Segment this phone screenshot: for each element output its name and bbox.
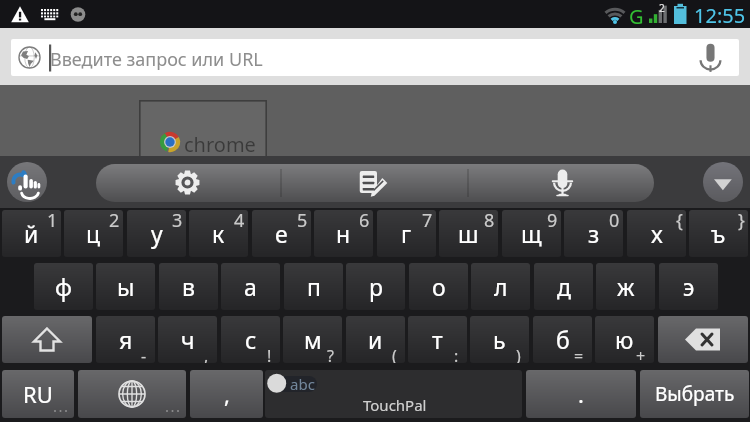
- staticText: о: [432, 271, 446, 302]
- staticText: }: [738, 210, 745, 233]
- button[interactable]: е: [252, 210, 311, 257]
- button[interactable]: и: [346, 316, 405, 363]
- button[interactable]: у: [127, 210, 186, 257]
- staticText: ?: [327, 345, 334, 363]
- button[interactable]: р: [346, 263, 405, 310]
- staticText: RU: [23, 379, 53, 409]
- staticText: ч: [181, 324, 195, 355]
- staticText: (: [392, 345, 397, 363]
- staticText: TouchPal: [363, 395, 427, 415]
- button[interactable]: н: [314, 210, 373, 257]
- button[interactable]: Settings: [96, 164, 282, 202]
- staticText: к: [212, 218, 225, 249]
- button[interactable]: abc: [265, 370, 522, 418]
- staticText: ъ: [711, 218, 726, 249]
- staticText: ): [516, 345, 521, 363]
- button[interactable]: п: [284, 263, 343, 310]
- staticText: ж: [617, 271, 635, 302]
- button[interactable]: д: [534, 263, 593, 310]
- staticText: э: [683, 271, 695, 302]
- staticText: 6: [359, 210, 370, 233]
- staticText: 4: [234, 210, 245, 233]
- button[interactable]: ъ: [689, 210, 748, 257]
- button[interactable]: chrome: [139, 100, 267, 156]
- staticText: !: [267, 345, 272, 363]
- button[interactable]: .: [526, 370, 636, 418]
- staticText: л: [494, 271, 508, 302]
- staticText: б: [556, 324, 570, 355]
- button[interactable]: TouchPal: [7, 162, 47, 202]
- button[interactable]: RU: [2, 370, 74, 418]
- button[interactable]: а: [221, 263, 280, 310]
- staticText: и: [368, 324, 383, 355]
- staticText: chrome: [184, 131, 256, 158]
- button[interactable]: т: [408, 316, 467, 363]
- staticText: {: [676, 210, 683, 233]
- staticText: -: [141, 345, 147, 363]
- button[interactable]: ч: [158, 316, 217, 363]
- staticText: м: [304, 324, 322, 355]
- staticText: 2: [659, 1, 665, 15]
- staticText: ю: [615, 324, 634, 355]
- staticText: н: [336, 218, 351, 249]
- staticText: в: [182, 271, 195, 302]
- staticText: з: [588, 218, 600, 249]
- button[interactable]: ь: [470, 316, 529, 363]
- button[interactable]: Backspace: [658, 316, 748, 363]
- button[interactable]: о: [409, 263, 468, 310]
- button[interactable]: ф: [34, 263, 93, 310]
- staticText: Введите запрос или URL: [50, 47, 263, 72]
- button[interactable]: ц: [64, 210, 123, 257]
- staticText: 0: [609, 210, 620, 233]
- staticText: д: [557, 271, 571, 302]
- staticText: й: [24, 218, 39, 249]
- button[interactable]: ,: [190, 370, 263, 418]
- button[interactable]: г: [377, 210, 436, 257]
- button[interactable]: я: [96, 316, 155, 363]
- staticText: р: [369, 271, 383, 302]
- staticText: х: [651, 218, 663, 249]
- staticText: 8: [484, 210, 495, 233]
- staticText: ш: [458, 218, 479, 249]
- button[interactable]: ж: [596, 263, 655, 310]
- button[interactable]: Notes: [282, 164, 468, 202]
- staticText: а: [244, 271, 257, 302]
- button[interactable]: Shift: [2, 316, 92, 363]
- button[interactable]: з: [564, 210, 623, 257]
- staticText: ,: [204, 345, 209, 363]
- button[interactable]: Введите запрос или URL: [11, 39, 739, 76]
- staticText: 3: [172, 210, 183, 233]
- staticText: 5: [297, 210, 308, 233]
- button[interactable]: с: [221, 316, 280, 363]
- button[interactable]: ш: [439, 210, 498, 257]
- staticText: 7: [422, 210, 433, 233]
- staticText: т: [432, 324, 443, 355]
- staticText: Выбрать: [655, 381, 735, 407]
- button[interactable]: б: [533, 316, 592, 363]
- staticText: +: [636, 345, 646, 363]
- button[interactable]: Voice input: [468, 164, 654, 202]
- staticText: :: [454, 345, 459, 363]
- button[interactable]: в: [159, 263, 218, 310]
- staticText: .: [578, 379, 584, 409]
- button[interactable]: к: [189, 210, 248, 257]
- staticText: ц: [86, 218, 101, 249]
- button[interactable]: й: [2, 210, 61, 257]
- button[interactable]: э: [659, 263, 718, 310]
- staticText: е: [275, 218, 288, 249]
- staticText: 1: [47, 210, 58, 233]
- button[interactable]: Change language: [78, 370, 186, 418]
- staticText: с: [245, 324, 257, 355]
- button[interactable]: Выбрать: [640, 370, 749, 418]
- button[interactable]: Hide keyboard: [703, 162, 743, 202]
- button[interactable]: х: [627, 210, 686, 257]
- button[interactable]: щ: [502, 210, 561, 257]
- staticText: =: [574, 345, 584, 363]
- button[interactable]: ю: [595, 316, 654, 363]
- button[interactable]: ы: [96, 263, 155, 310]
- staticText: я: [119, 324, 133, 355]
- staticText: п: [307, 271, 321, 302]
- button[interactable]: м: [283, 316, 342, 363]
- button[interactable]: л: [471, 263, 530, 310]
- staticText: ,: [224, 379, 230, 409]
